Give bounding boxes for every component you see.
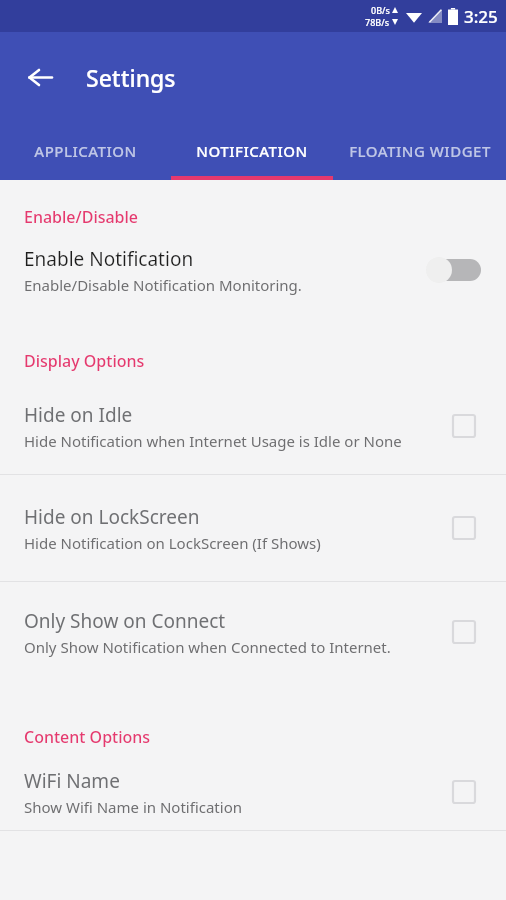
button[interactable]: Checkbox [446,614,482,650]
staticText: 78B/s [365,16,390,28]
staticText: Show Wifi Name in Notification [24,797,242,817]
staticText: Hide on Idle [24,402,133,428]
staticText: Only Show on Connect [24,608,226,634]
staticText: 3:25 [464,5,498,28]
staticText: Hide on LockScreen [24,504,200,530]
staticText: Enable Notification [24,246,194,272]
button[interactable]: Enable Notification [0,234,506,306]
button[interactable]: WiFi Name [0,754,506,830]
button[interactable]: Enable Notification toggle [426,252,482,288]
staticText: Enable/Disable Notification Monitoring. [24,275,302,295]
staticText: Settings [86,62,176,93]
button[interactable]: Back [14,51,66,103]
staticText: Only Show Notification when Connected to… [24,637,391,657]
button[interactable]: Only Show on Connect [0,582,506,682]
button[interactable]: Hide on Idle [0,378,506,474]
staticText: NOTIFICATION [196,141,308,161]
button[interactable]: APPLICATION [0,122,171,180]
button[interactable]: Hide on LockScreen [0,475,506,581]
button[interactable]: Checkbox [446,408,482,444]
button[interactable]: NOTIFICATION [171,122,333,180]
staticText: 0B/s [371,4,390,16]
staticText: Enable/Disable [24,206,139,228]
staticText: WiFi Name [24,768,120,794]
staticText: Hide Notification when Internet Usage is… [24,431,402,451]
staticText: Hide Notification on LockScreen (If Show… [24,533,321,553]
staticText: FLOATING WIDGET [349,141,491,161]
staticText: Display Options [24,350,145,372]
staticText: Content Options [24,726,151,748]
staticText: APPLICATION [34,141,137,161]
button[interactable]: Checkbox [446,774,482,810]
button[interactable]: Checkbox [446,510,482,546]
button[interactable]: FLOATING WIDGET [333,122,506,180]
